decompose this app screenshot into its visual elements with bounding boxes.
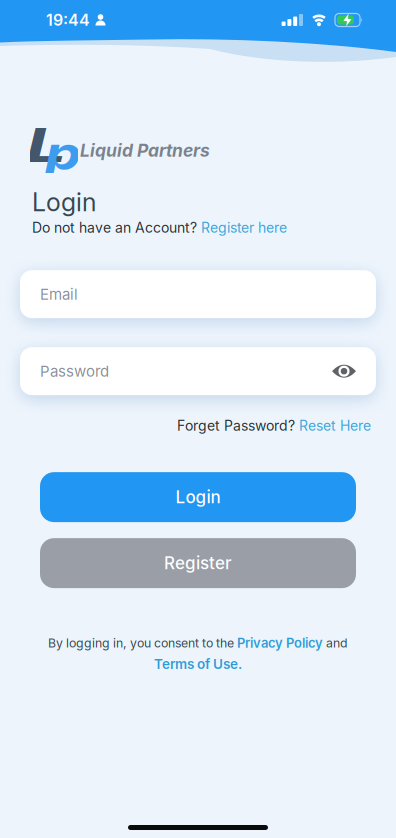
staticText: Forget Password? [177, 417, 295, 434]
staticText: Login [32, 187, 96, 217]
button[interactable]: Show password [332, 363, 356, 379]
button[interactable]: Terms of Use. [154, 656, 242, 672]
staticText: Privacy Policy [237, 635, 323, 651]
staticText: Email [40, 285, 78, 303]
staticText: Register [164, 553, 232, 573]
staticText: Login [175, 487, 220, 507]
button[interactable]: Email [20, 270, 376, 318]
button[interactable]: Reset Here [299, 417, 371, 434]
staticText: Reset Here [299, 417, 371, 434]
staticText: Liquid Partners [80, 140, 210, 161]
staticText: Register here [201, 219, 287, 236]
staticText: Password [40, 362, 109, 380]
staticText: Do not have an Account? [32, 219, 197, 236]
staticText: and [326, 636, 348, 650]
staticText: Terms of Use. [154, 656, 242, 672]
staticText: 19:44 [46, 10, 90, 30]
staticText: p [48, 125, 77, 181]
staticText: L [32, 114, 60, 174]
button[interactable]: Login [40, 472, 356, 522]
staticText: By logging in, you consent to the [48, 636, 234, 650]
button[interactable]: Register here [201, 219, 287, 236]
button[interactable]: Password [20, 347, 376, 395]
button[interactable]: Register [40, 538, 356, 588]
button[interactable]: Privacy Policy [237, 635, 323, 651]
